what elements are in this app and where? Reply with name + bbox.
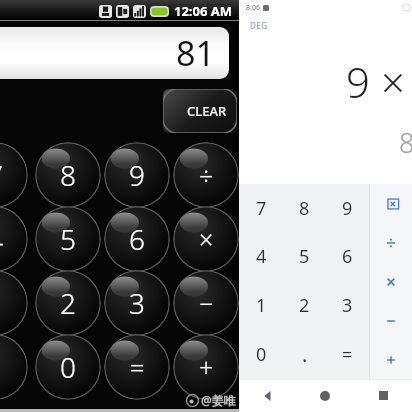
staticText: 5 bbox=[60, 220, 76, 258]
staticText: 8:06 bbox=[246, 3, 260, 13]
button[interactable]: 9 bbox=[326, 184, 369, 232]
staticText: 1 bbox=[0, 284, 3, 322]
button[interactable]: 0 bbox=[35, 334, 101, 400]
staticText: ÷ bbox=[199, 158, 214, 192]
staticText: 7 bbox=[0, 156, 3, 194]
button[interactable]: CLEAR bbox=[163, 89, 237, 133]
button[interactable]: 6 bbox=[104, 206, 170, 272]
button[interactable]: 9 bbox=[104, 142, 170, 208]
button[interactable]: Minus bbox=[370, 301, 412, 340]
staticText: 2 bbox=[299, 293, 310, 318]
button[interactable]: 3 bbox=[104, 270, 170, 336]
staticText: 8 bbox=[60, 156, 76, 194]
staticText: @姜唯 bbox=[201, 392, 236, 408]
button[interactable]: 4 bbox=[239, 232, 283, 281]
button[interactable]: Back bbox=[239, 379, 296, 412]
staticText: 0 bbox=[256, 342, 267, 367]
staticText: CLEAR bbox=[187, 102, 227, 120]
staticText: 8 bbox=[299, 196, 310, 221]
button[interactable]: = bbox=[104, 334, 170, 400]
button[interactable]: − bbox=[173, 270, 239, 336]
button[interactable]: 81 bbox=[0, 27, 229, 79]
button[interactable]: 8 bbox=[283, 184, 326, 232]
button[interactable]: 0 bbox=[239, 330, 283, 379]
button[interactable]: 5 bbox=[283, 232, 326, 281]
staticText: = bbox=[130, 350, 145, 384]
staticText: 3 bbox=[129, 284, 145, 322]
staticText: 12:06 AM bbox=[174, 2, 233, 20]
staticText: 9 bbox=[342, 196, 353, 221]
button[interactable]: Divide bbox=[370, 223, 412, 262]
button[interactable]: 2 bbox=[35, 270, 101, 336]
staticText: − bbox=[199, 286, 214, 320]
button[interactable]: DEG bbox=[250, 20, 268, 31]
staticText: 1 bbox=[256, 293, 267, 318]
button[interactable]: . bbox=[283, 330, 326, 379]
staticText: 81 bbox=[176, 30, 215, 76]
staticText: 4 bbox=[0, 220, 3, 258]
button[interactable]: Plus bbox=[370, 340, 412, 379]
button[interactable]: 5 bbox=[35, 206, 101, 272]
staticText: 4 bbox=[256, 244, 267, 269]
button[interactable]: 3 bbox=[326, 281, 369, 330]
button[interactable]: 6 bbox=[326, 232, 369, 281]
button[interactable]: 7 bbox=[0, 142, 28, 208]
staticText: 0 bbox=[60, 348, 76, 386]
button[interactable]: 8 bbox=[35, 142, 101, 208]
button[interactable]: 7 bbox=[239, 184, 283, 232]
staticText: × bbox=[199, 222, 214, 256]
button[interactable]: = bbox=[326, 330, 369, 379]
button[interactable]: . bbox=[0, 334, 28, 400]
button[interactable]: + bbox=[173, 334, 239, 400]
staticText: 9 bbox=[129, 156, 145, 194]
staticText: 6 bbox=[342, 244, 353, 269]
button[interactable]: 1 bbox=[239, 281, 283, 330]
button[interactable]: ÷ bbox=[173, 142, 239, 208]
button[interactable]: 2 bbox=[283, 281, 326, 330]
staticText: 81 bbox=[399, 124, 412, 161]
button[interactable]: 1 bbox=[0, 270, 28, 336]
button[interactable]: × bbox=[173, 206, 239, 272]
staticText: = bbox=[342, 342, 353, 367]
staticText: 7 bbox=[256, 196, 267, 221]
staticText: 5 bbox=[299, 244, 310, 269]
staticText: 9 × 9 bbox=[346, 53, 412, 110]
staticText: 2 bbox=[60, 284, 76, 322]
staticText: . bbox=[302, 341, 308, 368]
button[interactable]: 4 bbox=[0, 206, 28, 272]
button[interactable]: Home bbox=[296, 379, 354, 412]
staticText: 6 bbox=[129, 220, 145, 258]
button[interactable]: Recents bbox=[354, 379, 412, 412]
staticText: + bbox=[199, 350, 214, 384]
staticText: 3 bbox=[342, 293, 353, 318]
button[interactable]: Multiply bbox=[370, 262, 412, 301]
button[interactable]: del bbox=[370, 184, 412, 223]
